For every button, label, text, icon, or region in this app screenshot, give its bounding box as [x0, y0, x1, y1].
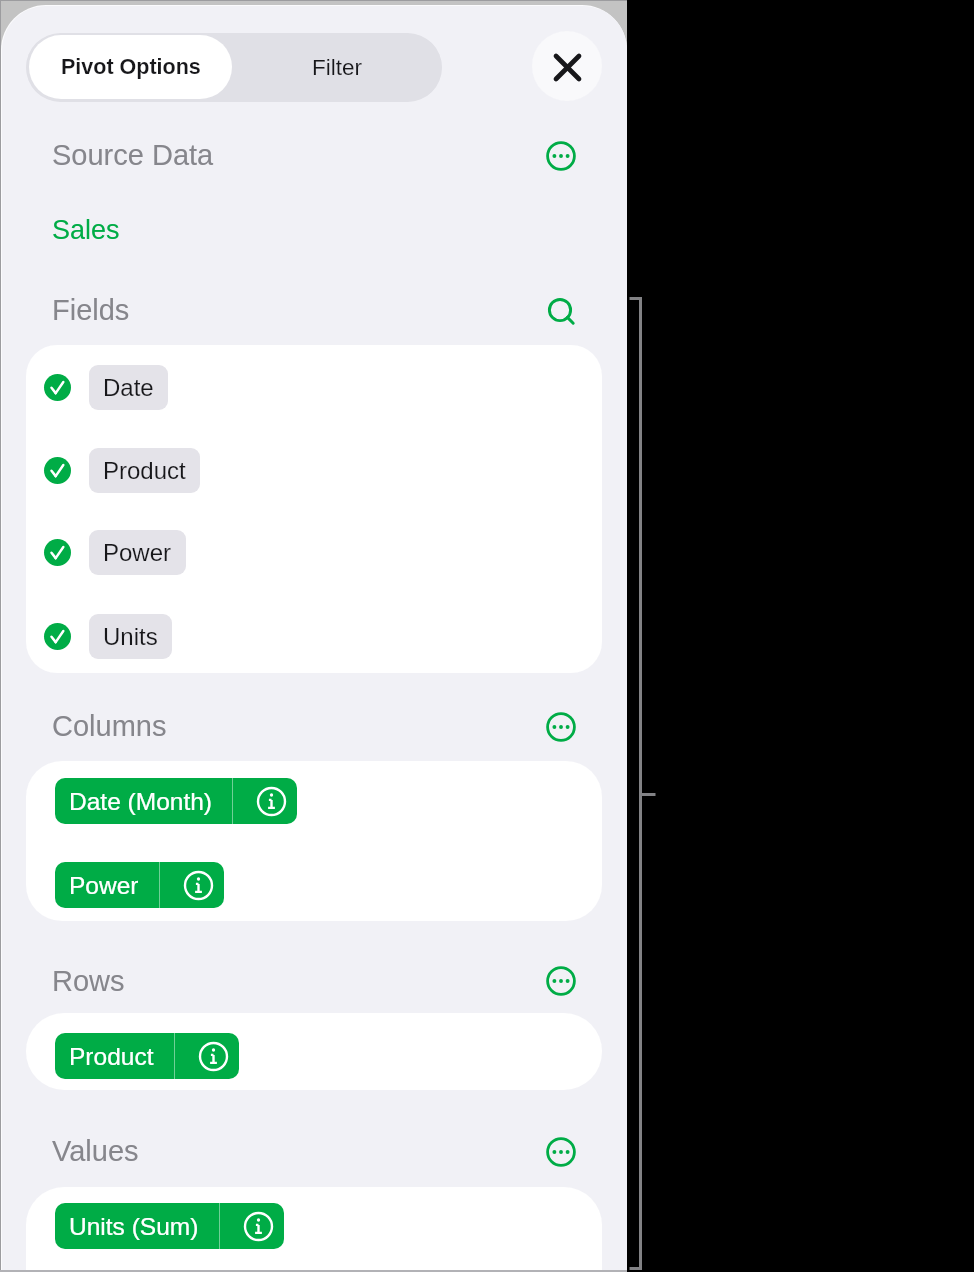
- button[interactable]: More options: [538, 1129, 584, 1175]
- button[interactable]: Pivot Options: [29, 35, 232, 99]
- button[interactable]: Close: [532, 31, 602, 101]
- staticText: Product: [103, 457, 186, 484]
- button[interactable]: Units (Sum): [55, 1203, 284, 1249]
- button[interactable]: Product: [55, 1033, 239, 1079]
- staticText: Rows: [52, 965, 125, 997]
- staticText: Fields: [52, 294, 130, 326]
- staticText: Power: [69, 872, 139, 899]
- staticText: Date: [103, 374, 154, 401]
- button[interactable]: Power: [44, 525, 186, 579]
- staticText: Filter: [312, 55, 362, 80]
- button[interactable]: Date: [44, 360, 168, 414]
- staticText: Columns: [52, 710, 167, 742]
- staticText: Product: [69, 1043, 154, 1070]
- button[interactable]: Filter: [231, 33, 442, 102]
- button[interactable]: Search: [540, 290, 580, 330]
- staticText: Units: [103, 623, 158, 650]
- button[interactable]: Units: [44, 609, 172, 663]
- button[interactable]: Sales: [51, 209, 121, 249]
- staticText: Values: [52, 1135, 139, 1167]
- button[interactable]: More options: [538, 958, 584, 1004]
- staticText: Units (Sum): [69, 1213, 199, 1240]
- staticText: Pivot Options: [61, 55, 201, 79]
- button[interactable]: Date (Month): [55, 778, 297, 824]
- button[interactable]: More options: [538, 704, 584, 750]
- staticText: Source Data: [52, 139, 214, 171]
- staticText: Power: [103, 539, 172, 566]
- staticText: Date (Month): [69, 788, 212, 815]
- button[interactable]: Power: [55, 862, 224, 908]
- staticText: Sales: [52, 215, 120, 245]
- button[interactable]: More options: [538, 133, 584, 179]
- button[interactable]: Product: [44, 443, 200, 497]
